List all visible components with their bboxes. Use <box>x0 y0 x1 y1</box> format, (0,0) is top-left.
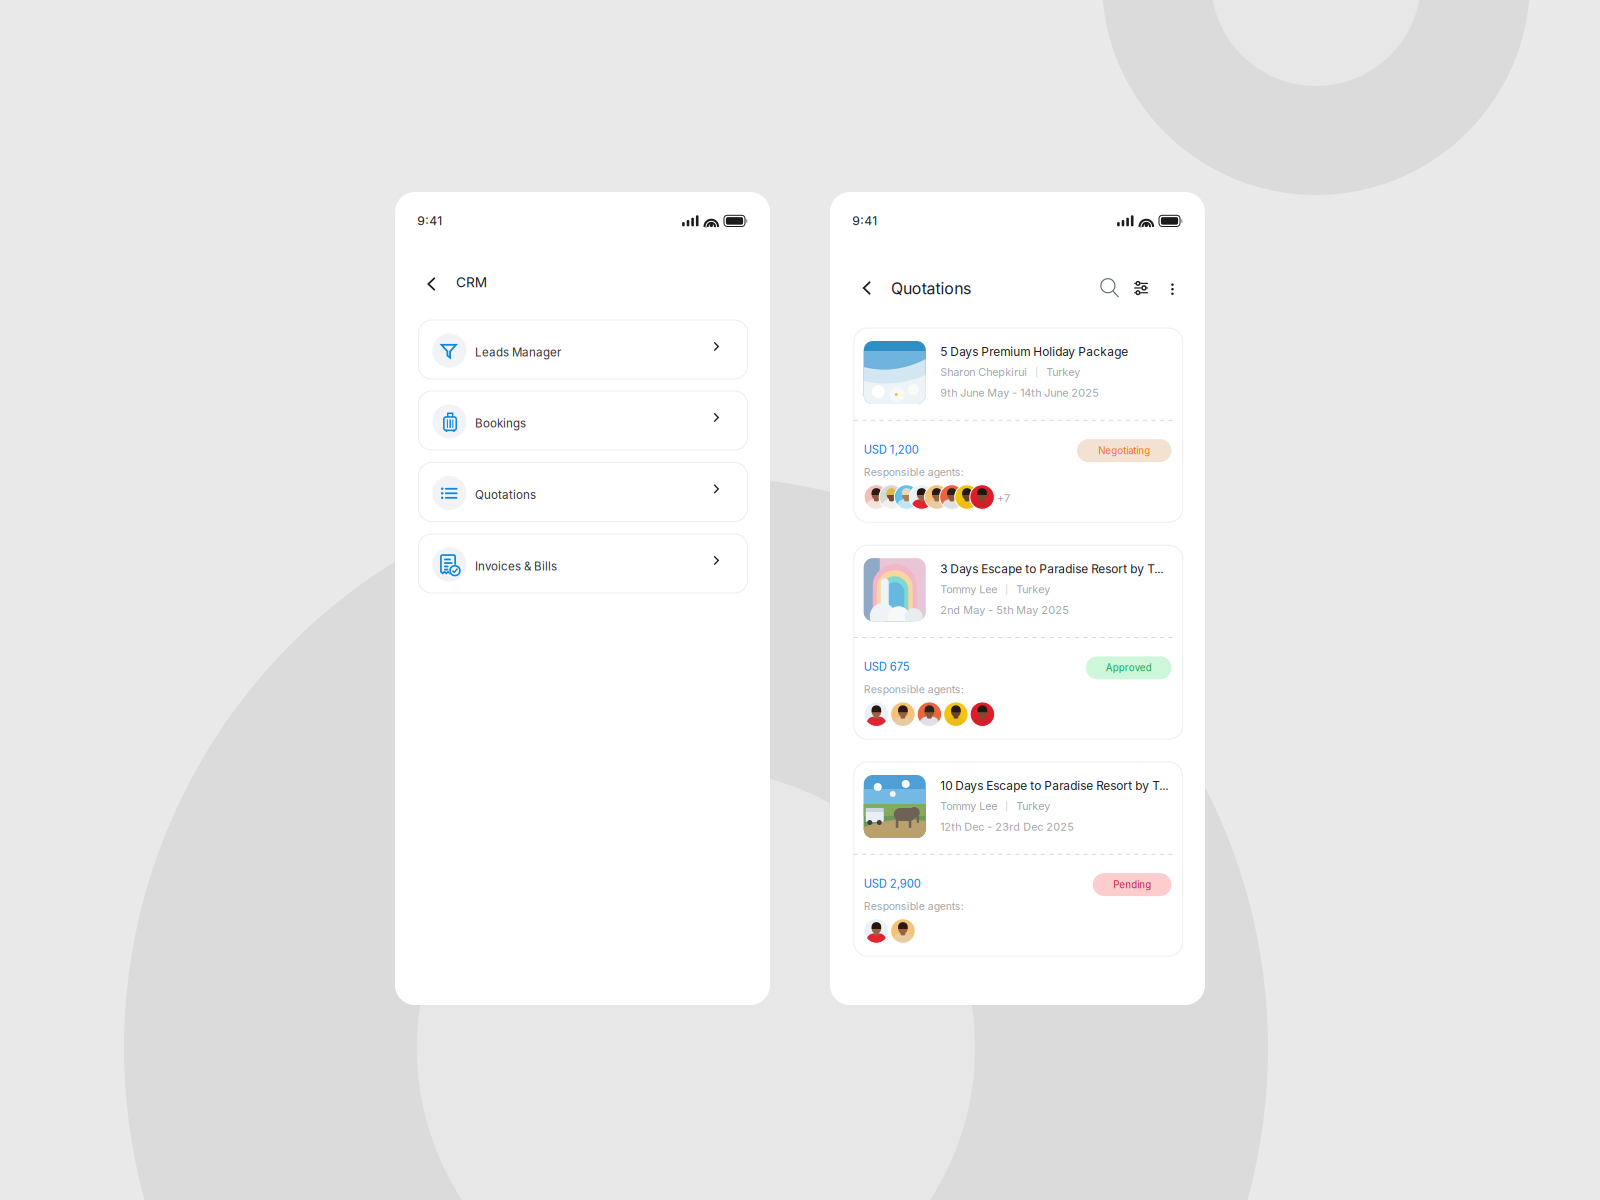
button[interactable]: Quotations <box>418 462 747 521</box>
staticText: Quotations <box>891 279 971 298</box>
button[interactable]: Back <box>421 273 443 295</box>
staticText: Pending <box>1113 879 1151 890</box>
button[interactable]: More options <box>1168 280 1194 312</box>
staticText: CRM <box>456 274 487 291</box>
staticText: 2nd May - 5th May 2025 <box>940 603 1069 617</box>
button[interactable]: 10 Days Escape to Paradise Resort by T..… <box>854 762 1183 956</box>
staticText: USD 675 <box>864 660 910 674</box>
button[interactable]: Bookings <box>418 391 747 450</box>
staticText: Negotiating <box>1098 445 1150 456</box>
button[interactable]: Leads Manager <box>418 320 747 379</box>
button[interactable]: Back <box>856 277 878 299</box>
staticText: Bookings <box>475 416 526 430</box>
staticText: Turkey <box>1016 583 1050 596</box>
button[interactable]: Filter <box>1131 278 1163 310</box>
staticText: Leads Manager <box>475 345 561 359</box>
staticText: 9:41 <box>852 213 877 228</box>
staticText: Responsible agents: <box>864 900 964 913</box>
staticText: Turkey <box>1046 366 1080 379</box>
staticText: USD 2,900 <box>864 877 921 890</box>
staticText: Responsible agents: <box>864 683 964 696</box>
button[interactable]: 5 Days Premium Holiday Package <box>854 328 1183 522</box>
staticText: +7 <box>997 492 1010 505</box>
staticText: Quotations <box>475 488 536 502</box>
staticText: Sharon Chepkirui <box>940 366 1027 379</box>
staticText: Turkey <box>1016 800 1050 813</box>
staticText: Tommy Lee <box>940 800 997 813</box>
staticText: 3 Days Escape to Paradise Resort by T... <box>940 562 1163 576</box>
staticText: Approved <box>1106 662 1152 674</box>
button[interactable]: Invoices & Bills <box>418 534 747 593</box>
staticText: Tommy Lee <box>940 583 997 596</box>
staticText: 12th Dec - 23rd Dec 2025 <box>940 820 1074 833</box>
staticText: 9:41 <box>417 213 442 228</box>
staticText: 5 Days Premium Holiday Package <box>940 345 1128 359</box>
button[interactable]: 3 Days Escape to Paradise Resort by T... <box>854 545 1183 739</box>
staticText: Invoices & Bills <box>475 559 557 573</box>
staticText: USD 1,200 <box>864 443 919 456</box>
button[interactable]: Search <box>1097 275 1131 308</box>
staticText: Responsible agents: <box>864 466 964 479</box>
staticText: 10 Days Escape to Paradise Resort by T..… <box>940 779 1168 793</box>
staticText: 9th June May - 14th June 2025 <box>940 386 1099 399</box>
